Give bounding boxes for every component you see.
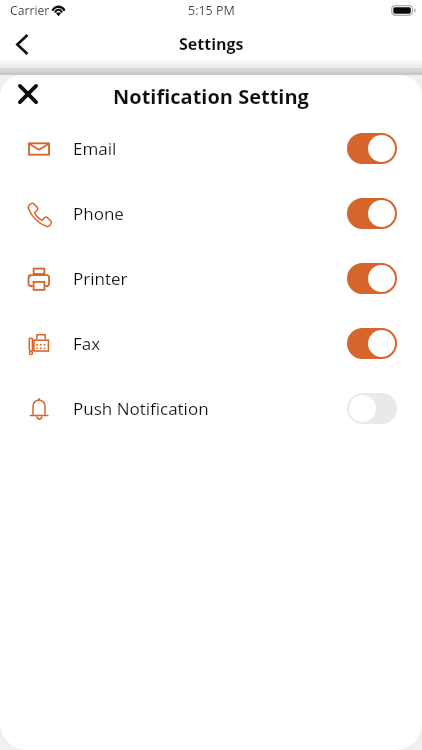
button[interactable]: Back (4, 26, 40, 62)
button[interactable]: Phone (0, 181, 422, 246)
staticText: Phone (73, 202, 124, 225)
button[interactable]: Fax (0, 311, 422, 376)
button[interactable]: Printer (0, 246, 422, 311)
staticText: Printer (73, 267, 128, 290)
staticText: Notification Setting (113, 83, 309, 110)
staticText: 5:15 PM (188, 2, 235, 19)
staticText: Email (73, 137, 117, 160)
button[interactable]: Toggle on (347, 263, 397, 294)
button[interactable]: Email (0, 116, 422, 181)
button[interactable]: Toggle on (347, 133, 397, 164)
button[interactable]: Toggle on (347, 328, 397, 359)
staticText: Push Notification (73, 397, 209, 420)
button[interactable]: Toggle on (347, 198, 397, 229)
button[interactable]: Push Notification (0, 376, 422, 441)
button[interactable]: Toggle off (347, 393, 397, 424)
button[interactable]: Close (6, 75, 50, 116)
staticText: Fax (73, 332, 101, 355)
staticText: Settings (179, 33, 244, 55)
staticText: Carrier (10, 2, 50, 19)
